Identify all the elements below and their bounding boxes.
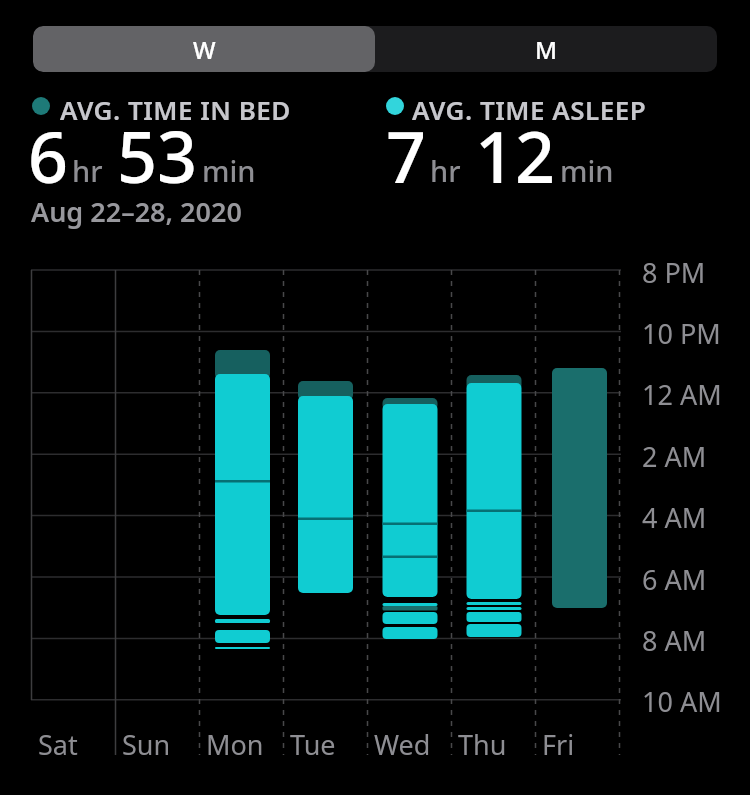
staticText: Sun <box>122 726 171 763</box>
staticText: 12 AM <box>642 376 722 413</box>
staticText: hr <box>430 151 461 190</box>
staticText: Aug 22–28, 2020 <box>31 193 242 230</box>
staticText: Mon <box>206 726 264 763</box>
staticText: Thu <box>458 726 507 763</box>
staticText: min <box>202 151 256 190</box>
staticText: 53 <box>117 108 198 203</box>
staticText: 2 AM <box>642 438 707 475</box>
staticText: 6 <box>28 108 69 203</box>
staticText: Sat <box>38 726 78 763</box>
staticText: M <box>535 33 558 66</box>
staticText: 8 AM <box>642 622 707 659</box>
staticText: 6 AM <box>642 561 707 598</box>
button[interactable]: M <box>375 26 717 72</box>
button[interactable]: W <box>33 26 375 72</box>
staticText: 7 <box>386 108 427 203</box>
staticText: 8 PM <box>642 254 706 291</box>
staticText: 12 <box>475 108 556 203</box>
staticText: 4 AM <box>642 499 707 536</box>
staticText: Wed <box>374 726 431 763</box>
staticText: hr <box>72 151 103 190</box>
staticText: W <box>193 33 216 66</box>
staticText: AVG. TIME IN BED <box>60 92 291 127</box>
staticText: Tue <box>290 726 336 763</box>
staticText: 10 PM <box>642 315 721 352</box>
staticText: AVG. TIME ASLEEP <box>412 92 647 127</box>
staticText: 10 AM <box>642 683 722 720</box>
staticText: min <box>560 151 614 190</box>
staticText: Fri <box>542 726 575 763</box>
